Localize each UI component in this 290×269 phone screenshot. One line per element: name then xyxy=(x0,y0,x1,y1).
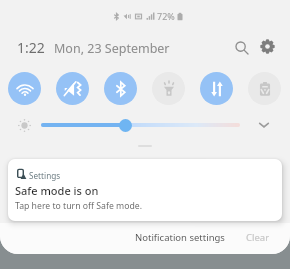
staticText: Settings xyxy=(29,170,61,181)
button[interactable]: Expand xyxy=(253,114,275,136)
button[interactable]: Mobile data xyxy=(200,72,233,105)
button[interactable]: Bluetooth xyxy=(104,72,137,105)
button[interactable]: Search xyxy=(229,35,254,60)
staticText: Clear xyxy=(246,231,270,244)
button[interactable]: Power saving xyxy=(248,72,281,105)
staticText: Safe mode is on xyxy=(15,183,99,198)
button[interactable]: Wi-Fi xyxy=(8,72,41,105)
button[interactable]: Settings xyxy=(255,34,280,59)
button[interactable]: Notification settings xyxy=(127,226,233,249)
staticText: 72% xyxy=(157,10,175,22)
staticText: 1:22 xyxy=(17,38,45,57)
button[interactable]: Settings xyxy=(8,159,282,221)
staticText: Tap here to turn off Safe mode. xyxy=(15,200,143,212)
button[interactable]: Sound off xyxy=(56,72,89,105)
staticText: Notification settings xyxy=(135,231,225,244)
staticText: Mon, 23 September xyxy=(54,40,170,57)
button[interactable]: Brightness xyxy=(119,119,132,132)
button[interactable]: Flashlight xyxy=(152,72,185,105)
button[interactable]: Clear xyxy=(238,226,278,249)
